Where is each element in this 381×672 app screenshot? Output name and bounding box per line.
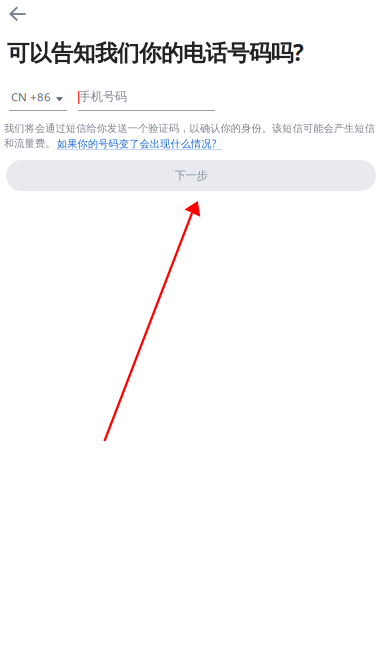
button[interactable]: Back bbox=[0, 0, 39, 32]
staticText: 可以告知我们你的电话号码吗? bbox=[7, 37, 304, 67]
staticText: 下一步 bbox=[174, 168, 207, 183]
staticText: 如果你的号码变了会出现什么情况? bbox=[57, 137, 216, 150]
staticText: 我们将会通过短信给你发送一个验证码，以确认你的身份。该短信可能会产生短信 bbox=[4, 122, 375, 135]
button[interactable]: Country code bbox=[9, 89, 67, 111]
button[interactable]: Phone number bbox=[78, 89, 215, 111]
staticText: CN +86 bbox=[11, 89, 51, 105]
button[interactable]: 下一步 bbox=[6, 160, 376, 191]
staticText: 和流量费。 bbox=[4, 137, 55, 150]
button[interactable]: 如果你的号码变了会出现什么情况? bbox=[57, 138, 223, 152]
staticText: 手机号码 bbox=[79, 89, 127, 104]
